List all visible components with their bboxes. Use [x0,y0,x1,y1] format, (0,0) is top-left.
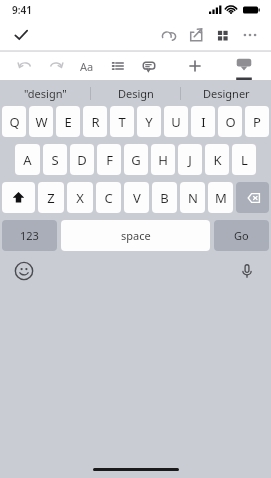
staticText: S [51,151,59,169]
staticText: G [131,151,141,169]
button[interactable]: Grid view [212,24,234,46]
button[interactable]: More options [239,24,261,46]
staticText: V [133,189,141,207]
button[interactable]: Hide keyboard [231,52,257,80]
button[interactable]: F [97,144,121,175]
button[interactable]: T [110,106,134,137]
button[interactable]: Go [214,220,269,251]
button[interactable]: J [178,144,202,175]
staticText: L [241,151,248,169]
button[interactable]: K [205,144,229,175]
button[interactable]: R [83,106,107,137]
button[interactable]: W [29,106,53,137]
button[interactable]: M [208,182,233,213]
staticText: C [104,189,113,207]
staticText: J [188,151,192,169]
staticText: space [121,228,151,243]
button[interactable]: Redo [45,55,67,77]
button[interactable]: Y [137,106,161,137]
staticText: O [225,113,236,131]
staticText: Z [47,189,55,207]
button[interactable]: B [152,182,177,213]
staticText: M [215,189,227,207]
button[interactable]: Insert [184,55,206,77]
button[interactable]: Done [10,24,32,46]
staticText: B [160,189,169,207]
button[interactable]: Backspace [236,182,269,213]
button[interactable]: Share [185,24,207,46]
button[interactable]: V [124,182,149,213]
button[interactable]: Voice input [235,259,259,283]
button[interactable]: Z [38,182,64,213]
button[interactable]: U [164,106,188,137]
staticText: Designer [203,86,250,101]
staticText: I [201,113,206,131]
staticText: X [76,189,84,207]
button[interactable]: E [56,106,80,137]
button[interactable]: H [151,144,175,175]
button[interactable]: N [180,182,205,213]
button[interactable]: 123 [2,220,57,251]
button[interactable]: I [191,106,215,137]
button[interactable]: S [43,144,67,175]
staticText: Q [9,113,20,131]
button[interactable]: Emoji [12,259,36,283]
button[interactable]: P [245,106,269,137]
staticText: P [253,113,261,131]
staticText: H [158,151,168,169]
button[interactable]: Shift [2,182,35,213]
button[interactable]: X [67,182,93,213]
button[interactable]: Aa [76,55,98,77]
button[interactable]: Sync to cloud [158,24,180,46]
staticText: E [64,113,72,131]
staticText: D [77,151,87,169]
staticText: Go [234,228,249,243]
button[interactable]: C [96,182,121,213]
staticText: A [23,151,32,169]
staticText: K [213,151,222,169]
button[interactable]: D [70,144,94,175]
button[interactable]: G [124,144,148,175]
staticText: F [106,151,113,169]
button[interactable]: Design [91,80,181,106]
button[interactable]: Comment [138,55,160,77]
staticText: Aa [80,59,94,74]
staticText: N [188,189,198,207]
button[interactable]: Undo [14,55,36,77]
staticText: 123 [20,228,39,243]
staticText: "design" [24,86,67,101]
button[interactable]: space [61,220,210,251]
staticText: 9:41 [12,3,32,17]
staticText: U [171,113,181,131]
staticText: W [35,113,48,131]
button[interactable]: Q [2,106,26,137]
staticText: Design [118,86,154,101]
button[interactable]: L [232,144,256,175]
staticText: R [91,113,100,131]
button[interactable]: "design" [0,80,91,106]
button[interactable]: Designer [181,80,271,106]
button[interactable]: A [15,144,40,175]
staticText: T [118,113,126,131]
staticText: Y [145,113,153,131]
button[interactable]: Bullet list [107,55,129,77]
button[interactable]: O [218,106,242,137]
